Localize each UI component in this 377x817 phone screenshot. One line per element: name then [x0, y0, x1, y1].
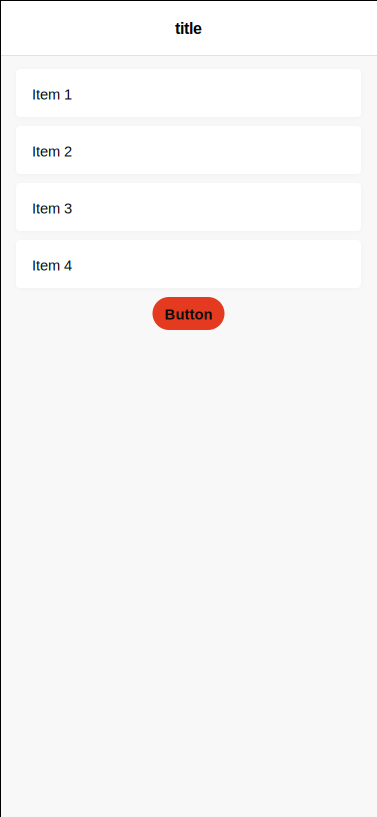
button[interactable]: Button [152, 297, 224, 330]
button[interactable]: Item 3 [16, 183, 361, 231]
staticText: Item 2 [32, 143, 72, 160]
staticText: title [175, 20, 202, 37]
staticText: Item 3 [32, 200, 72, 217]
staticText: Item 4 [32, 257, 72, 274]
staticText: Item 1 [32, 86, 72, 103]
staticText: Button [164, 306, 212, 323]
button[interactable]: Item 4 [16, 240, 361, 288]
button[interactable]: Item 2 [16, 126, 361, 174]
button[interactable]: Item 1 [16, 69, 361, 117]
